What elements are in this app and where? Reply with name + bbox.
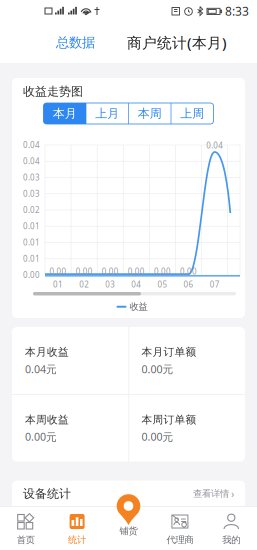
staticText: 0.01 bbox=[23, 221, 40, 231]
button[interactable]: 代理商 bbox=[154, 506, 206, 550]
staticText: 首页 bbox=[17, 534, 35, 546]
staticText: 0.04元 bbox=[25, 362, 57, 376]
staticText: 收益走势图 bbox=[23, 84, 83, 99]
staticText: 铺货 bbox=[119, 525, 137, 537]
button[interactable]: 查看详情 bbox=[193, 487, 234, 501]
staticText: 商户统计(本月) bbox=[127, 33, 227, 52]
button[interactable]: 本月 bbox=[43, 103, 86, 124]
staticText: 8:33 bbox=[225, 3, 249, 19]
staticText: 0.01 bbox=[23, 237, 40, 248]
button[interactable]: 商户统计(本月) bbox=[127, 32, 227, 52]
staticText: 0.03 bbox=[23, 188, 40, 199]
staticText: 0.04 bbox=[206, 140, 223, 151]
staticText: › bbox=[231, 487, 234, 501]
staticText: 0.00元 bbox=[141, 430, 173, 444]
staticText: 0.00 bbox=[128, 266, 145, 277]
staticText: 0.00 bbox=[49, 266, 66, 277]
staticText: 我的 bbox=[222, 534, 240, 546]
staticText: 本月 bbox=[53, 106, 77, 121]
staticText: 05 bbox=[157, 279, 167, 290]
button[interactable]: 我的 bbox=[206, 506, 257, 550]
staticText: 0.04 bbox=[23, 140, 40, 150]
staticText: 本周收益 bbox=[25, 413, 69, 426]
staticText: 0.00 bbox=[154, 266, 171, 277]
staticText: 本月收益 bbox=[25, 345, 69, 358]
button[interactable]: 统计 bbox=[51, 506, 103, 550]
staticText: 收益 bbox=[129, 301, 147, 312]
button[interactable]: 上周 bbox=[171, 103, 213, 124]
staticText: 0.00元 bbox=[25, 430, 57, 444]
staticText: 本月订单额 bbox=[141, 345, 196, 358]
staticText: 04 bbox=[131, 279, 141, 290]
staticText: 0.01 bbox=[23, 253, 40, 264]
staticText: 03 bbox=[105, 279, 115, 290]
staticText: 设备统计 bbox=[23, 486, 71, 501]
staticText: 总数据 bbox=[56, 34, 95, 51]
staticText: 02 bbox=[79, 279, 89, 290]
staticText: 0.04 bbox=[23, 156, 40, 166]
staticText: 查看详情 bbox=[193, 488, 229, 499]
staticText: 上月 bbox=[95, 106, 119, 121]
staticText: 0.00 bbox=[76, 266, 93, 277]
button[interactable]: 总数据 bbox=[56, 32, 95, 52]
staticText: 0.00 bbox=[102, 266, 119, 277]
staticText: 上周 bbox=[180, 106, 204, 121]
button[interactable]: 上月 bbox=[86, 103, 128, 124]
staticText: 0.00 bbox=[180, 266, 197, 277]
staticText: 0.00 bbox=[23, 270, 40, 280]
button[interactable]: 首页 bbox=[0, 506, 51, 550]
staticText: 本周 bbox=[138, 106, 162, 121]
button[interactable]: 铺货 bbox=[103, 494, 154, 536]
staticText: 0.03 bbox=[23, 172, 40, 183]
staticText: 07 bbox=[210, 279, 220, 290]
button[interactable]: 本周 bbox=[128, 103, 171, 124]
staticText: 代理商 bbox=[166, 534, 193, 546]
staticText: 01 bbox=[53, 279, 63, 290]
staticText: 统计 bbox=[68, 534, 86, 546]
staticText: 06 bbox=[184, 279, 194, 290]
staticText: 0.02 bbox=[23, 205, 40, 215]
staticText: 0.00元 bbox=[141, 362, 173, 376]
staticText: 本周订单额 bbox=[141, 413, 196, 426]
